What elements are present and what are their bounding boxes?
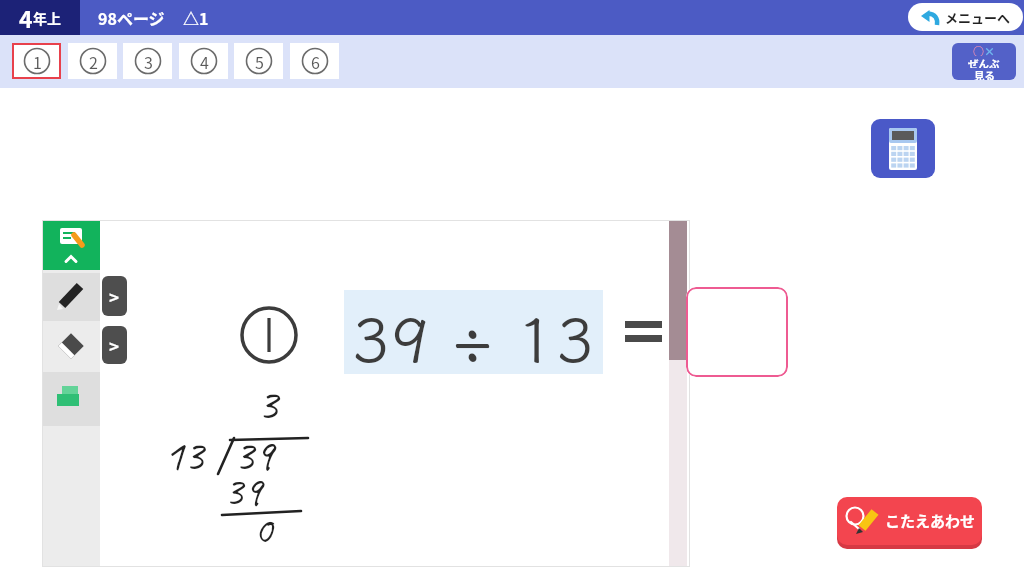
staticText: こたえあわせ	[885, 510, 976, 532]
staticText: 0	[254, 505, 272, 555]
staticText: 5	[255, 50, 264, 73]
staticText: △1	[183, 6, 209, 29]
button[interactable]: こたえあわせ	[837, 497, 982, 545]
button[interactable]	[871, 119, 935, 178]
staticText: >	[109, 333, 120, 358]
staticText: 13	[164, 428, 204, 483]
staticText: 39 ÷ 13	[352, 290, 596, 374]
staticText: 98ページ	[98, 6, 165, 29]
button[interactable]: 1	[12, 43, 61, 79]
button[interactable]	[686, 287, 788, 377]
button[interactable]	[42, 273, 100, 321]
button[interactable]: 3	[123, 43, 172, 79]
staticText: ぜんぶ	[968, 56, 1000, 68]
button[interactable]: >	[102, 326, 127, 364]
staticText: 3	[144, 50, 153, 73]
staticText: 3	[257, 375, 278, 433]
button[interactable]: 4	[179, 43, 228, 79]
button[interactable]: ○	[952, 43, 1016, 80]
button[interactable]: メニューへ	[908, 3, 1023, 31]
button[interactable]	[42, 220, 100, 270]
staticText: 1	[33, 50, 42, 73]
staticText: 見る	[974, 68, 995, 80]
staticText: 39	[234, 428, 274, 483]
button[interactable]	[42, 324, 100, 370]
staticText: 年上	[33, 8, 61, 28]
staticText: 2	[89, 50, 98, 73]
staticText: ○	[973, 43, 984, 56]
button[interactable]: 5	[234, 43, 283, 79]
staticText: メニューへ	[945, 8, 1011, 27]
staticText: 39	[224, 465, 262, 518]
button[interactable]: 2	[68, 43, 117, 79]
staticText: ×	[984, 43, 995, 56]
button[interactable]	[42, 372, 100, 426]
staticText: >	[109, 284, 120, 309]
button[interactable]: >	[102, 276, 127, 316]
staticText: 4	[200, 50, 209, 73]
staticText: 6	[311, 50, 320, 73]
button[interactable]: 6	[290, 43, 339, 79]
staticText: 4	[19, 1, 33, 34]
